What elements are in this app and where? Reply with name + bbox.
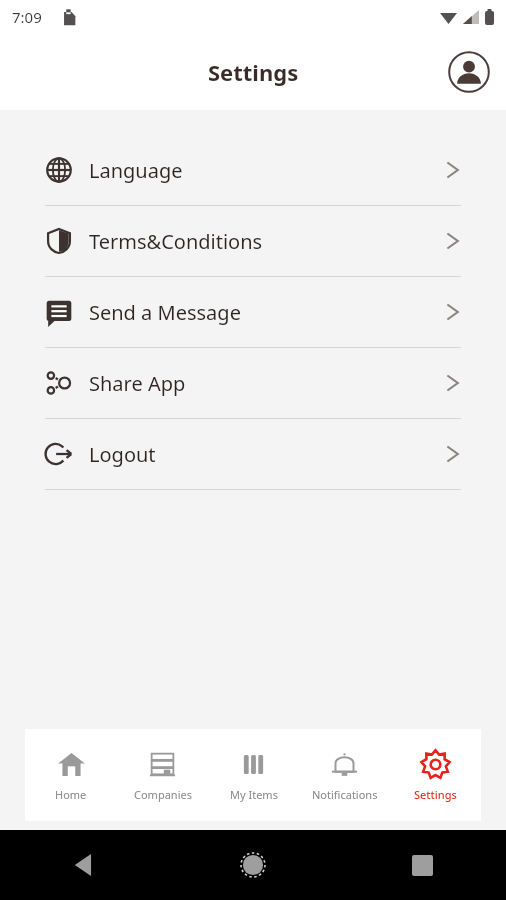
staticText: Language: [89, 157, 445, 184]
staticText: Logout: [89, 441, 445, 468]
button[interactable]: Companies: [117, 729, 208, 821]
button[interactable]: Terms&Conditions: [0, 206, 506, 276]
staticText: Home: [55, 787, 87, 802]
button[interactable]: Logout: [0, 419, 506, 489]
staticText: Notifications: [312, 787, 378, 802]
staticText: 7:09: [12, 7, 42, 27]
button[interactable]: Recent apps: [400, 843, 444, 887]
button[interactable]: Language: [0, 135, 506, 205]
button[interactable]: Home: [25, 729, 117, 821]
button[interactable]: Profile: [446, 49, 492, 95]
staticText: My Items: [230, 787, 278, 802]
staticText: Terms&Conditions: [89, 228, 445, 255]
staticText: Share App: [89, 370, 445, 397]
staticText: Send a Message: [89, 299, 445, 326]
button[interactable]: Back: [62, 843, 106, 887]
button[interactable]: Settings: [390, 729, 481, 821]
button[interactable]: Share App: [0, 348, 506, 418]
button[interactable]: Notifications: [299, 729, 390, 821]
staticText: Settings: [208, 57, 299, 87]
button[interactable]: Home: [231, 843, 275, 887]
staticText: Settings: [414, 787, 457, 802]
staticText: Companies: [134, 787, 192, 802]
button[interactable]: Send a Message: [0, 277, 506, 347]
button[interactable]: My Items: [208, 729, 299, 821]
